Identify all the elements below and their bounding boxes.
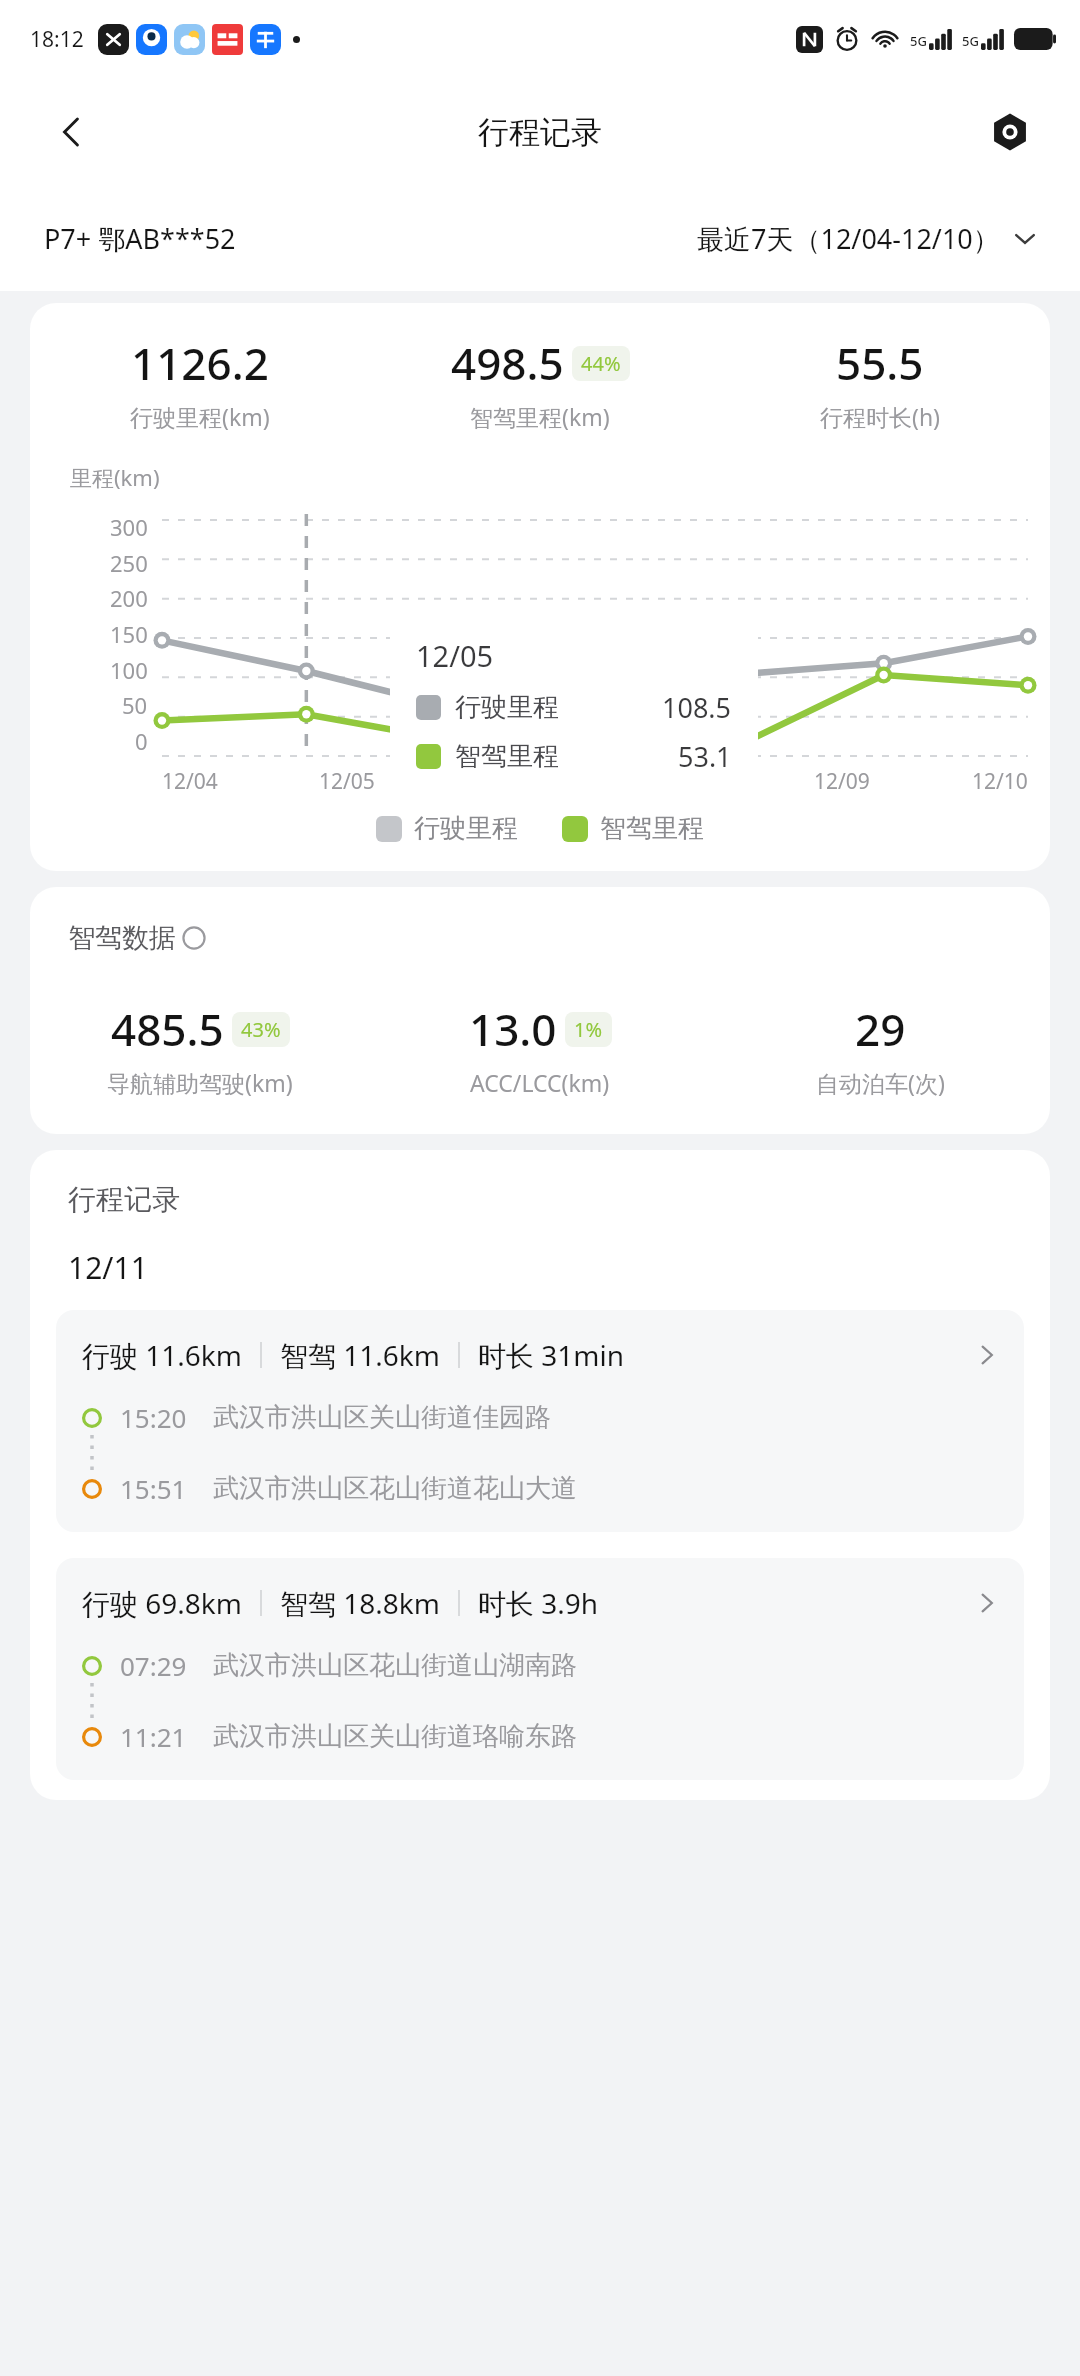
button[interactable]: P7+ 鄂AB***52 <box>44 220 236 257</box>
staticText: 行驶里程 <box>455 691 559 724</box>
staticText: 行程记录 <box>68 1182 180 1217</box>
staticText: 自动泊车(次) <box>816 1067 945 1098</box>
button[interactable]: 55.5 <box>710 333 1050 432</box>
staticText: 11:21 <box>120 1719 187 1754</box>
staticText: 200 <box>110 583 148 613</box>
staticText: 12/05 <box>416 636 494 675</box>
button[interactable]: 1126.2 <box>30 333 370 432</box>
staticText: 12/06 <box>442 767 498 796</box>
staticText: 智驾里程 <box>600 812 704 845</box>
staticText: 53.1 <box>678 738 732 775</box>
staticText: P7+ 鄂AB***52 <box>44 220 236 257</box>
staticText: 武汉市洪山区花山街道花山大道 <box>213 1472 577 1505</box>
staticText: 5G <box>962 32 979 50</box>
staticText: 498.5 <box>451 333 564 393</box>
staticText: 07:29 <box>120 1648 187 1683</box>
staticText: 50 <box>122 690 148 720</box>
staticText: 108.5 <box>662 689 732 726</box>
button[interactable]: 智驾数据 <box>68 921 206 955</box>
button[interactable]: 498.5 <box>370 333 710 432</box>
staticText: 武汉市洪山区花山街道山湖南路 <box>213 1649 577 1682</box>
staticText: 485.5 <box>111 999 224 1059</box>
staticText: 12/04 <box>162 767 218 796</box>
staticText: 100 <box>110 655 148 685</box>
button[interactable]: Settings <box>980 102 1040 162</box>
staticText: 55.5 <box>836 333 924 393</box>
staticText: 13.0 <box>469 999 557 1059</box>
staticText: 5G <box>910 32 927 50</box>
staticText: 里程(km) <box>70 462 160 492</box>
staticText: 智驾里程(km) <box>470 401 610 432</box>
staticText: 武汉市洪山区关山街道佳园路 <box>213 1401 551 1434</box>
staticText: 行程记录 <box>478 113 602 152</box>
staticText: 行驶 11.6km <box>82 1336 242 1374</box>
button[interactable]: 最近7天（12/04-12/10） <box>697 220 1036 257</box>
button[interactable]: Back <box>42 102 102 162</box>
staticText: 智驾 11.6km <box>280 1336 440 1374</box>
staticText: 15:20 <box>120 1400 187 1435</box>
staticText: 15:51 <box>120 1471 187 1506</box>
staticText: 最近7天（12/04-12/10） <box>697 220 1000 257</box>
staticText: 44% <box>581 350 621 377</box>
staticText: 1% <box>574 1016 603 1043</box>
staticText: 行驶里程(km) <box>130 401 270 432</box>
button[interactable]: 行驶 11.6km <box>56 1310 1024 1532</box>
staticText: 智驾 18.8km <box>280 1584 440 1622</box>
staticText: 18:12 <box>30 25 84 54</box>
staticText: ACC/LCC(km) <box>470 1067 610 1098</box>
button[interactable]: 485.5 <box>30 999 370 1098</box>
staticText: 时长 3.9h <box>478 1584 599 1622</box>
button[interactable]: 13.0 <box>370 999 710 1098</box>
staticText: 行驶里程 <box>414 812 518 845</box>
staticText: 1126.2 <box>131 333 269 393</box>
staticText: 0 <box>135 726 148 756</box>
staticText: 43% <box>241 1016 281 1043</box>
staticText: 250 <box>110 548 148 578</box>
staticText: 时长 31min <box>478 1336 625 1374</box>
button[interactable]: 行驶 69.8km <box>56 1558 1024 1780</box>
staticText: 300 <box>110 512 148 542</box>
staticText: 智驾数据 <box>68 921 176 955</box>
staticText: 12/10 <box>972 767 1028 796</box>
staticText: 12/05 <box>319 767 375 796</box>
staticText: 29 <box>855 999 906 1059</box>
button[interactable]: 29 <box>710 999 1050 1098</box>
staticText: 150 <box>110 619 148 649</box>
staticText: 导航辅助驾驶(km) <box>107 1067 293 1098</box>
staticText: 行程时长(h) <box>820 401 941 432</box>
staticText: 行驶 69.8km <box>82 1584 242 1622</box>
staticText: 12/09 <box>814 767 870 796</box>
staticText: 12/11 <box>68 1247 148 1288</box>
staticText: 智驾里程 <box>455 740 559 773</box>
staticText: 武汉市洪山区关山街道珞喻东路 <box>213 1720 577 1753</box>
